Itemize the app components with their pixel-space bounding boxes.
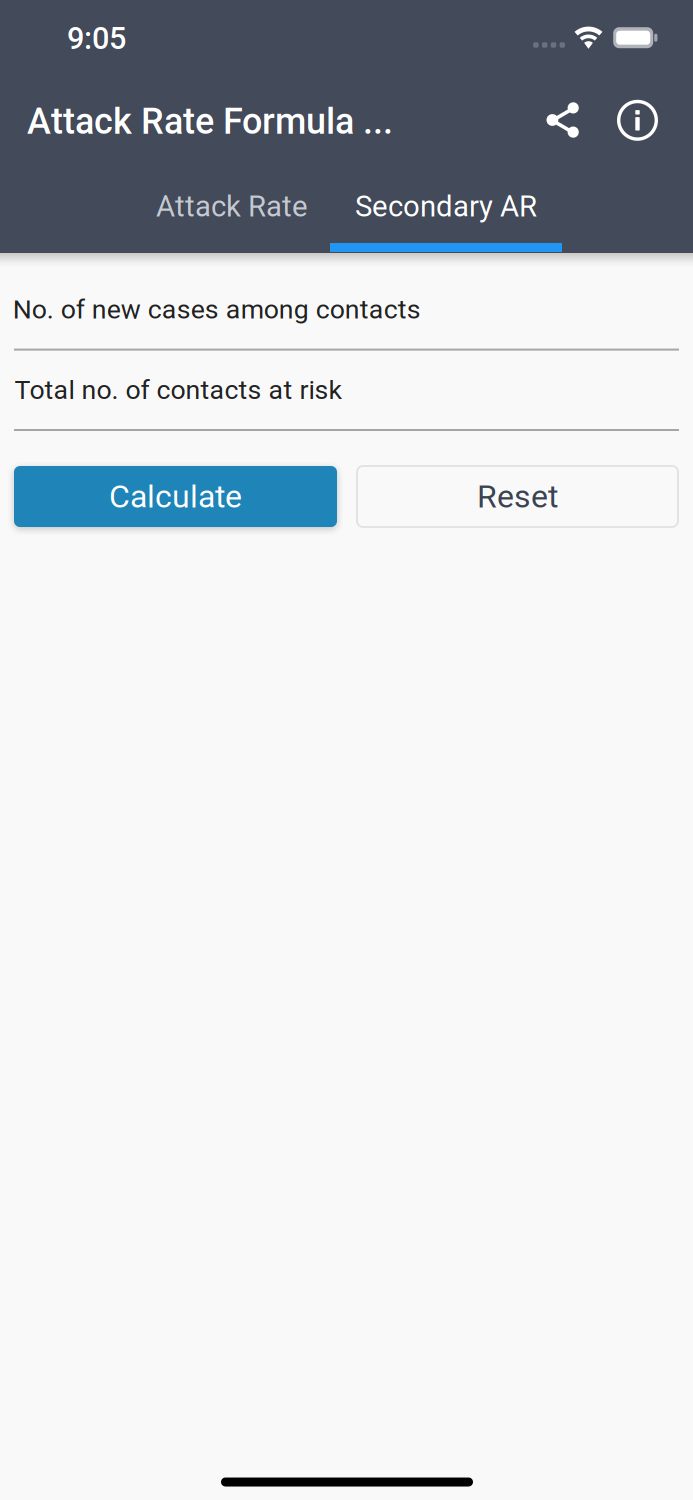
staticText: Reset	[477, 478, 558, 515]
staticText: Total no. of contacts at risk	[14, 374, 342, 406]
button[interactable]: Secondary AR	[330, 161, 562, 252]
button[interactable]: Attack Rate	[132, 161, 332, 252]
staticText: Secondary AR	[355, 189, 537, 224]
staticText: Attack Rate Formula ...	[27, 100, 393, 143]
staticText: No. of new cases among contacts	[13, 294, 421, 325]
staticText: Calculate	[109, 478, 242, 515]
staticText: 9:05	[67, 20, 126, 56]
button[interactable]: Info	[606, 89, 668, 151]
button[interactable]: Reset	[357, 466, 678, 527]
button[interactable]: Share	[532, 89, 594, 151]
staticText: Attack Rate	[156, 189, 308, 224]
button[interactable]: Calculate	[14, 466, 337, 527]
